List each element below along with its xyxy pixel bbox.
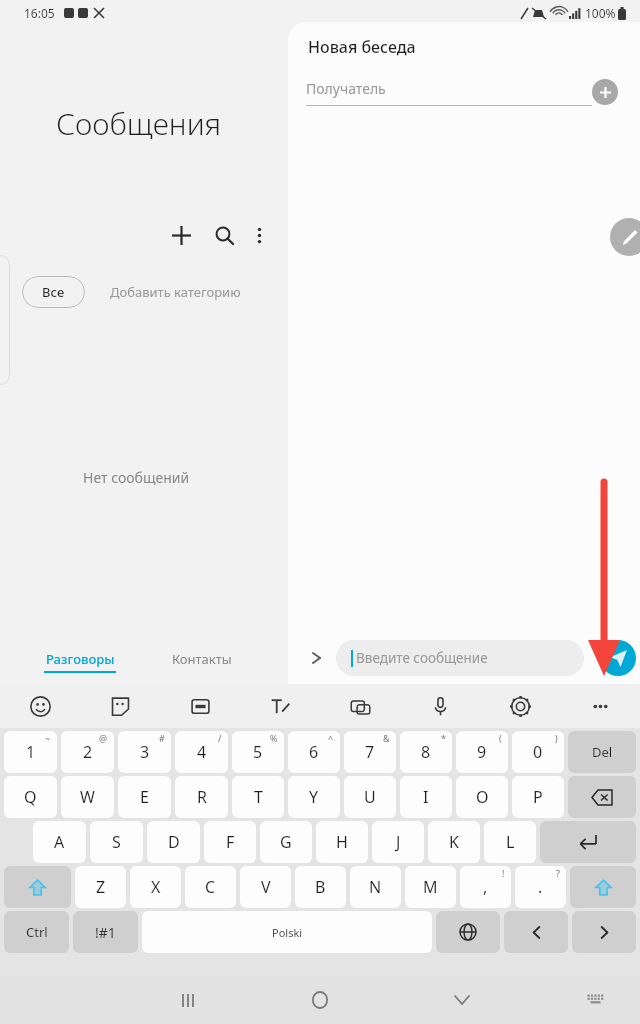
button[interactable]: L [484, 821, 536, 863]
staticText: A [54, 831, 65, 853]
button[interactable]: P [512, 776, 564, 818]
button[interactable]: 9 [456, 731, 508, 773]
button[interactable]: B [295, 866, 346, 908]
button[interactable]: C [185, 866, 236, 908]
button[interactable]: 7 [344, 731, 396, 773]
button[interactable]: 4 [175, 731, 228, 773]
button[interactable]: Shift [570, 866, 636, 908]
button[interactable]: , [460, 866, 511, 908]
button[interactable]: E [118, 776, 171, 818]
other: Сменить язык [459, 923, 477, 941]
button[interactable]: Поиск [206, 217, 242, 253]
button[interactable]: Y [288, 776, 340, 818]
staticText: ^ [328, 732, 334, 744]
staticText: I [423, 786, 429, 808]
button[interactable]: Вправо [572, 911, 636, 953]
button[interactable]: !#1 [73, 911, 138, 953]
button[interactable]: Контакты [172, 650, 232, 668]
button[interactable]: Настройки [480, 684, 560, 728]
staticText: M [423, 876, 438, 898]
button[interactable]: F [204, 821, 256, 863]
button[interactable]: M [405, 866, 456, 908]
staticText: 3 [140, 741, 150, 763]
button[interactable]: Shift [4, 866, 71, 908]
button[interactable]: S [90, 821, 143, 863]
button[interactable]: Недавние [158, 976, 218, 1024]
button[interactable]: Отправить [600, 640, 636, 676]
button[interactable]: 1 [4, 731, 57, 773]
staticText: 4 [197, 741, 207, 763]
button[interactable]: Развернуть [302, 644, 330, 672]
button[interactable]: A [33, 821, 86, 863]
button[interactable]: R [175, 776, 228, 818]
button[interactable]: Клавиатура [570, 976, 620, 1024]
button[interactable]: Эмодзи [0, 684, 80, 728]
button[interactable]: T [232, 776, 284, 818]
button[interactable]: J [372, 821, 424, 863]
button[interactable]: I [400, 776, 452, 818]
button[interactable]: Backspace [568, 776, 636, 818]
button[interactable]: O [456, 776, 508, 818]
staticText: 16:05 [24, 5, 55, 21]
button[interactable]: Добавить получателя [592, 79, 618, 105]
button[interactable]: Del [568, 731, 636, 773]
button[interactable]: Рукописный ввод [240, 684, 320, 728]
button[interactable]: N [350, 866, 401, 908]
button[interactable]: 6 [288, 731, 340, 773]
button[interactable]: 3 [118, 731, 171, 773]
button[interactable]: Домой [290, 976, 350, 1024]
staticText: 0 [533, 741, 543, 763]
staticText: G [280, 831, 292, 853]
button[interactable]: Ещё [241, 217, 277, 253]
staticText: B [315, 876, 326, 898]
button[interactable]: H [316, 821, 368, 863]
staticText: Новая беседа [308, 36, 416, 58]
button[interactable]: K [428, 821, 480, 863]
button[interactable]: Сменить язык [436, 911, 500, 953]
button[interactable]: 0 [512, 731, 564, 773]
button[interactable]: Введите сообщение [336, 640, 584, 676]
button[interactable]: W [61, 776, 114, 818]
button[interactable]: V [240, 866, 291, 908]
button[interactable]: Голосовой ввод [400, 684, 480, 728]
button[interactable]: Стикеры [80, 684, 160, 728]
staticText: Ctrl [26, 923, 48, 941]
staticText: 8 [421, 741, 431, 763]
button[interactable]: Все [22, 276, 85, 308]
button[interactable]: Ctrl [4, 911, 69, 953]
button[interactable]: Влево [504, 911, 568, 953]
staticText: Контакты [172, 650, 232, 668]
button[interactable]: 8 [400, 731, 452, 773]
button[interactable]: Z [75, 866, 126, 908]
staticText: % [270, 732, 278, 744]
button[interactable]: Буфер обмена [320, 684, 400, 728]
button[interactable]: Ещё [560, 684, 640, 728]
button[interactable]: Скрыть клавиатуру [432, 976, 492, 1024]
button[interactable]: Добавить категорию [100, 276, 251, 308]
button[interactable]: Polski [142, 911, 432, 953]
staticText: ? [556, 867, 560, 879]
staticText: Del [592, 743, 613, 761]
button[interactable]: Новое сообщение [163, 217, 199, 253]
staticText: . [538, 876, 543, 898]
staticText: / [218, 732, 222, 744]
button[interactable]: U [344, 776, 396, 818]
button[interactable]: 2 [61, 731, 114, 773]
staticText: @ [99, 732, 108, 744]
button[interactable]: GIF [160, 684, 240, 728]
button[interactable]: G [260, 821, 312, 863]
button[interactable]: 5 [232, 731, 284, 773]
staticText: N [369, 876, 382, 898]
staticText: Получатель [306, 79, 386, 98]
staticText: J [396, 831, 401, 853]
button[interactable]: Q [4, 776, 57, 818]
staticText: Нет сообщений [83, 468, 190, 487]
button[interactable]: Изменить [610, 218, 640, 256]
button[interactable]: X [130, 866, 181, 908]
staticText: D [168, 831, 180, 853]
button[interactable]: Enter [540, 821, 636, 863]
button[interactable]: Разговоры [44, 650, 116, 673]
button[interactable]: . [515, 866, 566, 908]
staticText: C [205, 876, 216, 898]
button[interactable]: D [147, 821, 200, 863]
